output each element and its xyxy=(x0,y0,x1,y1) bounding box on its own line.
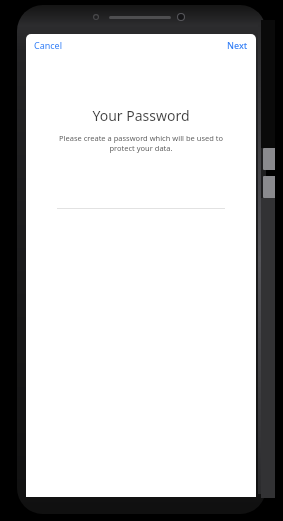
button[interactable] xyxy=(57,187,225,209)
staticText: Your Password xyxy=(26,106,256,125)
button[interactable]: Next xyxy=(223,36,252,54)
staticText: Please create a password which will be u… xyxy=(40,133,242,153)
staticText: Cancel xyxy=(34,39,63,51)
button[interactable]: Cancel xyxy=(30,36,67,54)
staticText: Next xyxy=(227,39,248,51)
